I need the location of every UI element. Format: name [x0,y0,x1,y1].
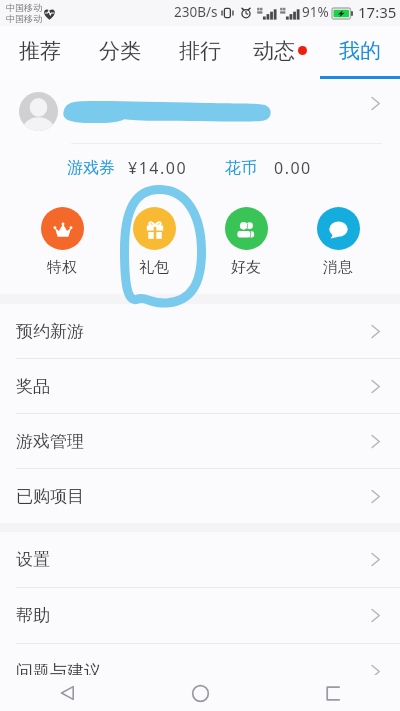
button[interactable]: 设置 [0,532,400,587]
staticText: 游戏管理 [16,431,84,452]
staticText: 游戏券 [67,158,115,178]
button[interactable]: 礼包 [108,207,200,277]
staticText: ¥14.00 [128,157,188,179]
button[interactable]: 消息 [292,207,384,277]
staticText: 排行 [179,38,221,64]
staticText: 奖品 [16,376,50,397]
staticText: 17:35 [358,2,397,22]
button[interactable]: 特权 [16,207,108,277]
staticText: 礼包 [139,258,169,277]
staticText: 花币 [225,158,257,178]
button[interactable]: Home [134,675,267,711]
button[interactable]: 问题与建议 [0,644,400,699]
staticText: 特权 [47,258,77,277]
staticText: 消息 [323,258,353,277]
button[interactable]: 动态 [240,26,320,79]
staticText: 我的 [339,38,381,64]
staticText: 分类 [99,38,141,64]
staticText: 设置 [16,549,50,570]
button[interactable]: Recent apps [267,675,400,711]
staticText: 好友 [231,258,261,277]
button[interactable]: 预约新游 [0,304,400,358]
staticText: 预约新游 [16,321,84,342]
staticText: 230B/s [174,3,218,21]
staticText: 91% [302,3,329,21]
button[interactable]: 花币 [225,157,312,179]
button[interactable]: 游戏券 [67,157,188,179]
button[interactable]: Back [0,675,134,711]
button[interactable]: 好友 [200,207,292,277]
staticText: 问题与建议 [16,661,101,682]
staticText: 帮助 [16,605,50,626]
button[interactable]: 帮助 [0,588,400,643]
staticText: 0.00 [274,157,312,179]
button[interactable]: 排行 [160,26,240,79]
staticText: 动态 [253,38,295,64]
button[interactable] [0,79,400,143]
button[interactable]: 奖品 [0,359,400,413]
button[interactable]: 推荐 [0,26,80,79]
staticText: 中国移动 [6,13,42,24]
button[interactable]: 游戏管理 [0,414,400,468]
staticText: 中国移动 [6,2,42,13]
button[interactable]: 已购项目 [0,469,400,523]
button[interactable]: 分类 [80,26,160,79]
staticText: 推荐 [19,38,61,64]
button[interactable]: 我的 [320,26,400,79]
staticText: 已购项目 [16,486,84,507]
